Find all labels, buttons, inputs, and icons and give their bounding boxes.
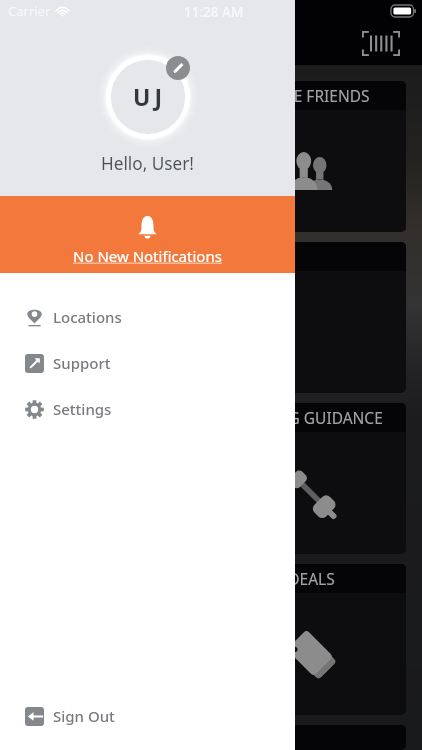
staticText: MY ACCOUNT	[61, 246, 161, 267]
button[interactable]: MY ACCOUNT	[16, 242, 205, 393]
button[interactable]: CATALOG	[16, 564, 205, 715]
button[interactable]: Scan barcode	[362, 31, 400, 56]
button[interactable]: Sign Out	[0, 693, 295, 739]
button[interactable]: DEALS	[217, 564, 406, 715]
staticText: UJ	[133, 81, 167, 112]
staticText: STORE LOCATOR	[51, 85, 171, 106]
staticText: Support	[53, 353, 111, 373]
button[interactable]: HOW TO	[16, 403, 205, 554]
button[interactable]: Settings	[0, 386, 295, 432]
staticText: No New Notifications	[73, 246, 222, 266]
staticText: Settings	[53, 399, 112, 419]
button[interactable]: Locations	[0, 294, 295, 340]
staticText: HOW TO	[79, 407, 142, 428]
button[interactable]: No New Notifications	[0, 196, 295, 273]
button[interactable]: BUYING GUIDANCE	[217, 403, 406, 554]
button[interactable]: Edit profile	[166, 56, 190, 80]
staticText: INVITE FRIENDS	[253, 85, 370, 106]
staticText: 11:28 AM	[184, 3, 244, 21]
button[interactable]: INVITE FRIENDS	[217, 81, 406, 232]
staticText: BUYING GUIDANCE	[241, 407, 383, 428]
staticText: Carrier	[8, 2, 51, 20]
staticText: Hello, User!	[101, 152, 194, 175]
button[interactable]	[217, 242, 406, 393]
staticText: Sign Out	[53, 706, 115, 726]
button[interactable]: SUPPORT	[16, 725, 205, 750]
staticText: Locations	[53, 307, 122, 327]
button[interactable]: STORE LOCATOR	[16, 81, 205, 232]
button[interactable]: Support	[0, 340, 295, 386]
button[interactable]	[217, 725, 406, 750]
staticText: DEALS	[288, 568, 335, 589]
